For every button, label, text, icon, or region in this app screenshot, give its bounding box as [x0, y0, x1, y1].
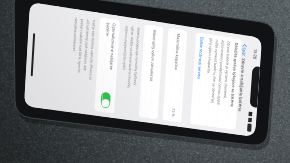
- button[interactable]: Photo of an iPhone on fabric showing Bat…: [0, 0, 290, 163]
